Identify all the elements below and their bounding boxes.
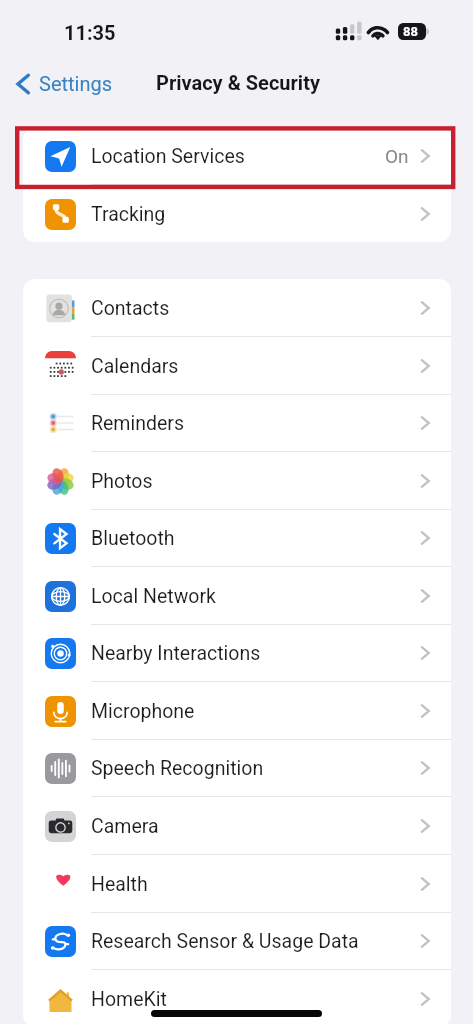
staticText: Calendars — [91, 355, 179, 378]
staticText: Speech Recognition — [91, 757, 264, 780]
button[interactable]: Research Sensor & Usage Data — [23, 912, 451, 970]
staticText: 11:35 — [64, 21, 116, 44]
button[interactable]: Tracking — [23, 185, 451, 242]
button[interactable]: HomeKit — [23, 970, 451, 1024]
staticText: Location Services — [91, 145, 245, 168]
staticText: Microphone — [91, 700, 195, 723]
staticText: Research Sensor & Usage Data — [91, 930, 359, 953]
button[interactable]: Local Network — [23, 567, 451, 625]
button[interactable]: Health — [23, 855, 451, 913]
staticText: Tracking — [91, 203, 166, 226]
button[interactable]: Bluetooth — [23, 509, 451, 567]
staticText: Contacts — [91, 297, 170, 320]
staticText: Health — [91, 873, 148, 896]
button[interactable]: Settings — [10, 70, 121, 97]
staticText: Privacy & Security — [156, 71, 320, 94]
staticText: Local Network — [91, 585, 216, 608]
staticText: HomeKit — [91, 988, 167, 1011]
staticText: Camera — [91, 815, 159, 838]
staticText: Nearby Interactions — [91, 642, 261, 665]
staticText: On — [385, 145, 409, 167]
staticText: Reminders — [91, 412, 184, 435]
button[interactable]: Microphone — [23, 682, 451, 740]
button[interactable]: Contacts — [23, 279, 451, 337]
staticText: Settings — [39, 72, 113, 95]
staticText: Bluetooth — [91, 527, 175, 550]
button[interactable]: Calendars — [23, 337, 451, 395]
button[interactable]: Reminders — [23, 394, 451, 452]
button[interactable]: Speech Recognition — [23, 739, 451, 797]
staticText: 88 — [403, 24, 418, 39]
staticText: Photos — [91, 470, 153, 493]
button[interactable]: Photos — [23, 452, 451, 510]
button[interactable]: Nearby Interactions — [23, 624, 451, 682]
button[interactable]: Location Services — [23, 127, 451, 185]
button[interactable]: Camera — [23, 797, 451, 855]
